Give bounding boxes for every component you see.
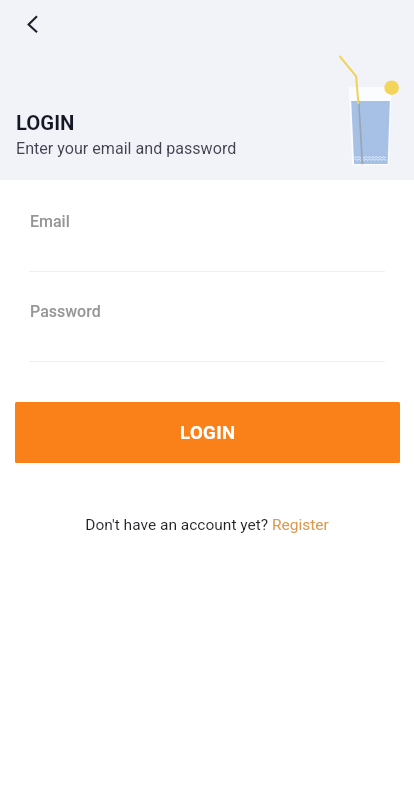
staticText: LOGIN bbox=[180, 422, 236, 444]
staticText: LOGIN bbox=[16, 111, 75, 135]
button[interactable] bbox=[29, 292, 385, 373]
button[interactable]: Back bbox=[12, 4, 54, 46]
staticText: Enter your email and password bbox=[16, 139, 237, 158]
button[interactable] bbox=[29, 202, 385, 283]
staticText: Email bbox=[30, 212, 70, 231]
button[interactable]: LOGIN bbox=[15, 402, 400, 463]
staticText: Don't have an account yet? Register bbox=[85, 516, 329, 534]
button[interactable]: Don't have an account yet? Register bbox=[0, 513, 414, 537]
staticText: Password bbox=[30, 302, 101, 321]
